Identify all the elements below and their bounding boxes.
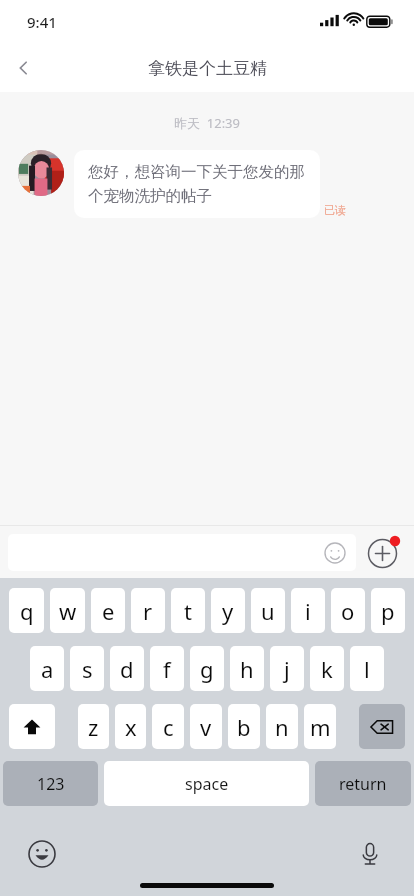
staticText: y <box>222 596 234 626</box>
button[interactable]: 您好，想咨询一下关于您发的那个宠物洗护的帖子 <box>74 150 320 218</box>
staticText: f <box>163 654 171 684</box>
button[interactable]: u <box>251 588 285 633</box>
button[interactable]: l <box>350 646 384 691</box>
button[interactable]: 123 <box>3 761 98 806</box>
button[interactable]: space <box>104 761 309 806</box>
staticText: u <box>261 596 275 626</box>
staticText: o <box>341 596 355 626</box>
staticText: space <box>185 773 229 795</box>
staticText: 拿铁是个土豆精 <box>148 58 267 79</box>
button[interactable]: Shift <box>9 704 55 749</box>
staticText: r <box>143 596 153 626</box>
button[interactable]: b <box>228 704 260 749</box>
staticText: 已读 <box>324 203 346 217</box>
staticText: n <box>275 712 289 742</box>
button[interactable]: t <box>171 588 205 633</box>
button[interactable]: y <box>211 588 245 633</box>
staticText: x <box>125 712 137 742</box>
staticText: h <box>240 654 254 684</box>
button[interactable]: h <box>230 646 264 691</box>
button[interactable]: Emoji <box>323 541 347 565</box>
staticText: k <box>321 654 333 684</box>
button[interactable]: r <box>131 588 165 633</box>
button[interactable]: p <box>371 588 405 633</box>
staticText: z <box>88 712 99 742</box>
staticText: g <box>200 654 214 684</box>
button[interactable]: q <box>9 588 44 633</box>
staticText: b <box>237 712 251 742</box>
staticText: a <box>41 654 54 684</box>
staticText: c <box>163 712 174 742</box>
button[interactable]: x <box>115 704 146 749</box>
staticText: p <box>381 596 395 626</box>
button[interactable]: a <box>30 646 64 691</box>
staticText: w <box>59 596 77 626</box>
button[interactable]: c <box>152 704 184 749</box>
staticText: l <box>364 654 370 684</box>
button[interactable]: Emoji keyboard <box>20 832 64 876</box>
button[interactable]: v <box>190 704 222 749</box>
staticText: return <box>339 773 387 795</box>
staticText: i <box>305 596 311 626</box>
button[interactable]: Backspace <box>359 704 405 749</box>
button[interactable]: i <box>291 588 325 633</box>
button[interactable]: return <box>315 761 411 806</box>
staticText: s <box>82 654 93 684</box>
button[interactable]: More options <box>362 530 406 574</box>
button[interactable]: Voice input <box>348 832 392 876</box>
button[interactable]: Message input <box>8 534 356 571</box>
button[interactable]: w <box>50 588 85 633</box>
staticText: 您好，想咨询一下关于您发的那个宠物洗护的帖子 <box>88 162 306 206</box>
staticText: e <box>102 596 115 626</box>
button[interactable]: s <box>70 646 104 691</box>
staticText: 123 <box>37 773 65 795</box>
button[interactable]: d <box>110 646 144 691</box>
button[interactable]: n <box>266 704 298 749</box>
staticText: 昨天 12:39 <box>174 114 240 132</box>
button[interactable]: z <box>78 704 109 749</box>
button[interactable]: g <box>190 646 224 691</box>
button[interactable]: j <box>270 646 304 691</box>
button[interactable]: k <box>310 646 344 691</box>
staticText: t <box>184 596 192 626</box>
staticText: v <box>200 712 212 742</box>
staticText: d <box>120 654 134 684</box>
staticText: j <box>284 654 290 684</box>
staticText: 9:41 <box>27 12 57 32</box>
staticText: m <box>310 712 331 742</box>
button[interactable]: Avatar <box>18 150 64 196</box>
button[interactable]: e <box>91 588 125 633</box>
staticText: q <box>20 596 34 626</box>
button[interactable]: o <box>331 588 365 633</box>
button[interactable]: f <box>150 646 184 691</box>
button[interactable]: m <box>304 704 336 749</box>
button[interactable]: Back <box>0 44 48 92</box>
